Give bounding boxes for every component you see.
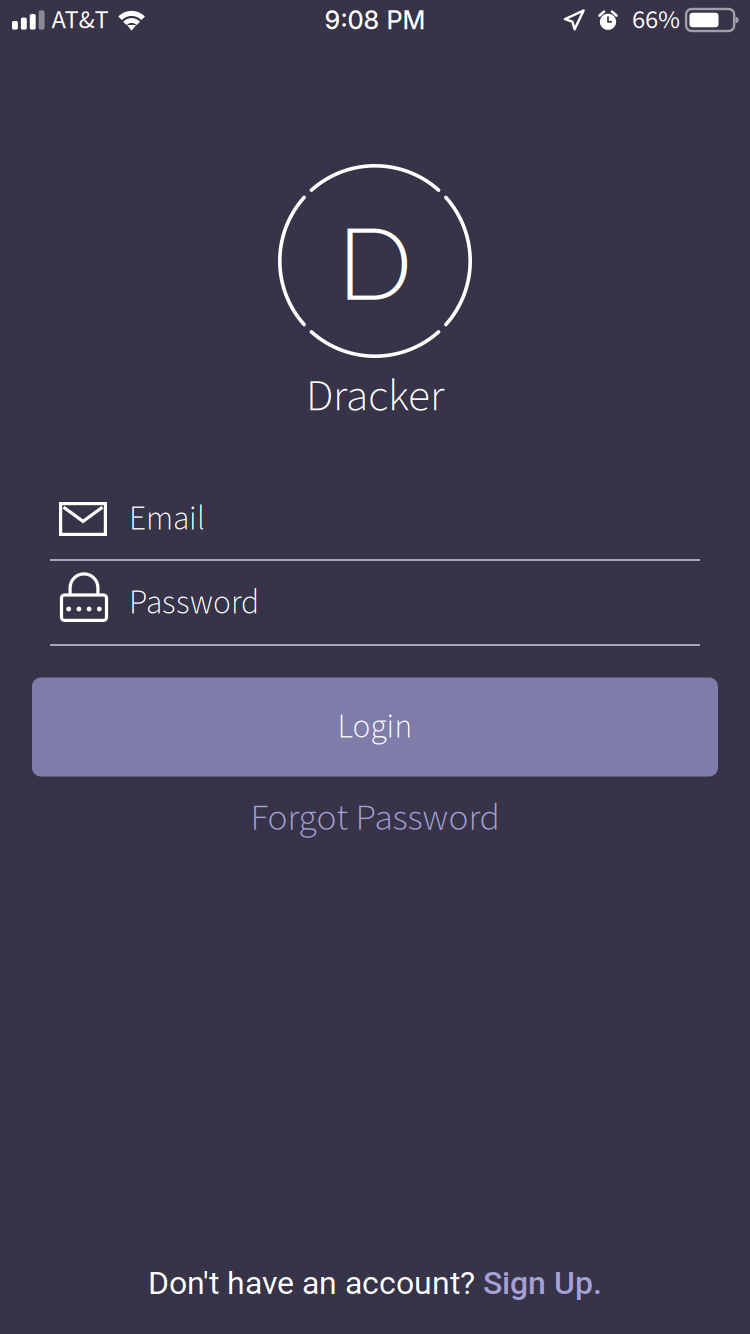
staticText: Password	[129, 579, 259, 627]
staticText: Dracker	[306, 364, 444, 428]
staticText: Forgot Password	[250, 791, 499, 845]
staticText: AT&T	[52, 1, 109, 39]
button[interactable]: Sign Up.	[483, 1264, 602, 1302]
staticText: D	[337, 201, 413, 321]
staticText: Login	[337, 703, 412, 751]
staticText: 66%	[632, 1, 680, 39]
staticText: Email	[129, 495, 205, 543]
staticText: 9:08 PM	[324, 5, 425, 35]
staticText: Sign Up.	[483, 1264, 602, 1302]
button[interactable]: Forgot Password	[145, 791, 605, 845]
button[interactable]: Login	[32, 677, 718, 776]
staticText: Don't have an account?	[148, 1264, 483, 1302]
